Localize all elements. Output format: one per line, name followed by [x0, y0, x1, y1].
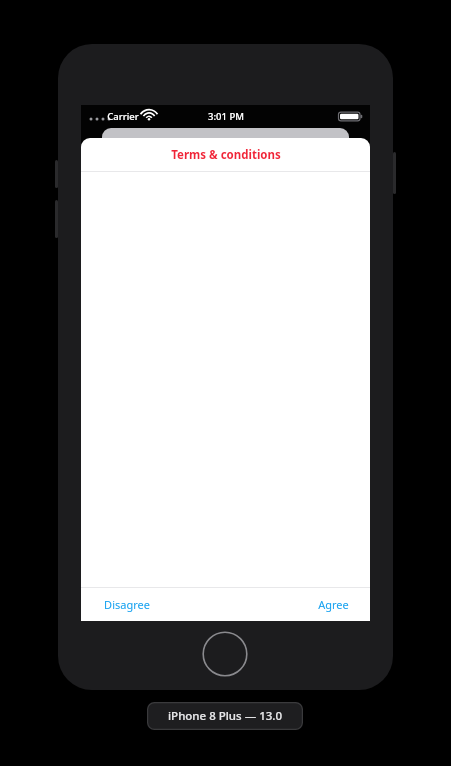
staticText: iPhone 8 Plus — 13.0 — [168, 708, 282, 724]
staticText: Disagree — [104, 597, 150, 612]
staticText: Agree — [318, 597, 349, 612]
button[interactable]: iPhone 8 Plus — 13.0 — [147, 702, 303, 730]
staticText: Terms & conditions — [171, 147, 281, 163]
staticText: 3:01 PM — [208, 110, 244, 123]
staticText: Carrier — [107, 110, 139, 123]
button[interactable]: Agree — [306, 588, 370, 621]
button[interactable]: Home — [202, 631, 248, 677]
button[interactable]: Disagree — [81, 588, 162, 621]
